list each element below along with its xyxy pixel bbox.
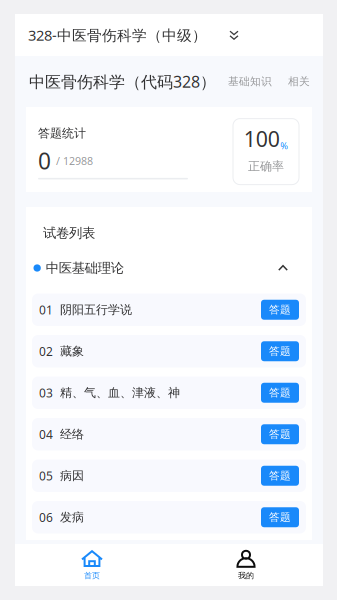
staticText: 中医骨伤科学（代码328） [29, 71, 216, 92]
staticText: 答题统计 [38, 126, 86, 141]
staticText: / 12988 [56, 154, 93, 168]
staticText: 答题 [269, 345, 291, 358]
button[interactable]: 06 [32, 501, 306, 533]
staticText: 正确率 [248, 159, 284, 174]
staticText: 01 [39, 302, 53, 318]
staticText: 藏象 [60, 344, 84, 359]
staticText: 答题 [269, 469, 291, 482]
button[interactable]: 03 [32, 376, 306, 409]
staticText: 328-中医骨伤科学（中级） [28, 25, 207, 45]
staticText: 我的 [238, 571, 254, 580]
staticText: 05 [39, 468, 53, 484]
staticText: 相关 [288, 75, 310, 88]
staticText: 02 [39, 343, 53, 359]
staticText: 阴阳五行学说 [60, 302, 132, 317]
staticText: 中医基础理论 [46, 260, 124, 276]
button[interactable]: 05 [32, 459, 306, 492]
staticText: 答题 [269, 428, 291, 441]
staticText: 答题 [269, 511, 291, 524]
staticText: 发病 [60, 510, 84, 525]
staticText: 06 [39, 509, 53, 525]
staticText: 答题 [269, 303, 291, 316]
button[interactable]: 中医基础理论 [32, 256, 306, 280]
staticText: % [280, 139, 288, 152]
button[interactable]: 02 [32, 335, 306, 367]
staticText: 答题 [269, 386, 291, 399]
button[interactable]: 我的 [169, 544, 323, 586]
staticText: 基础知识 [228, 75, 272, 88]
button[interactable]: 首页 [15, 544, 169, 586]
staticText: 04 [39, 426, 53, 442]
staticText: 试卷列表 [43, 225, 95, 241]
staticText: 首页 [84, 571, 100, 580]
staticText: 精、气、血、津液、神 [60, 385, 180, 400]
staticText: 病因 [60, 468, 84, 483]
staticText: 100 [244, 125, 280, 153]
staticText: 03 [39, 385, 53, 401]
button[interactable]: 01 [32, 293, 306, 326]
button[interactable]: 04 [32, 418, 306, 450]
staticText: 0 [38, 146, 51, 176]
staticText: 经络 [60, 427, 84, 442]
